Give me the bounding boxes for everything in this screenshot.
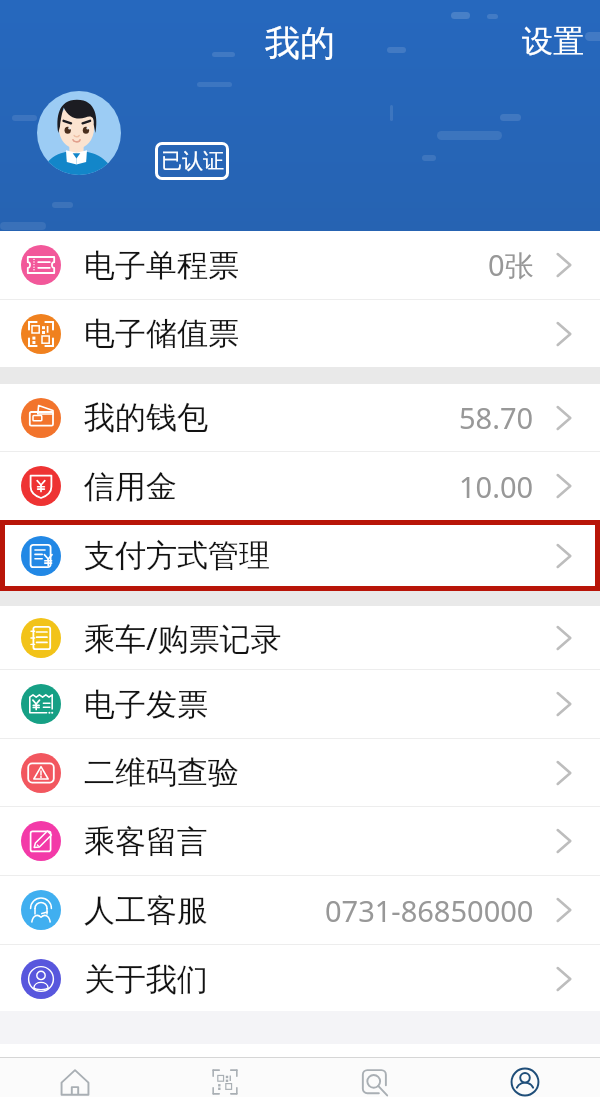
staticText: 0张	[488, 245, 534, 285]
button[interactable]: 我的钱包	[0, 384, 600, 451]
button[interactable]: Profile avatar	[37, 91, 121, 175]
staticText: 人工客服	[84, 891, 208, 930]
button[interactable]: 二维码查验	[0, 739, 600, 806]
button[interactable]: 支付方式管理	[0, 520, 600, 591]
button[interactable]: Home	[0, 1058, 150, 1097]
staticText: 0731-86850000	[325, 891, 534, 930]
button[interactable]: 已认证	[155, 142, 229, 180]
button[interactable]: 电子储值票	[0, 300, 600, 367]
button[interactable]: Search	[300, 1058, 450, 1097]
button[interactable]: Scan	[150, 1058, 300, 1097]
staticText: 我的	[265, 21, 335, 65]
staticText: 设置	[522, 22, 584, 61]
staticText: 信用金	[84, 467, 177, 506]
staticText: 电子储值票	[84, 314, 239, 353]
staticText: 乘客留言	[84, 822, 208, 861]
staticText: 我的钱包	[84, 398, 208, 437]
staticText: 电子发票	[84, 685, 208, 724]
button[interactable]: Profile	[450, 1058, 600, 1097]
staticText: 支付方式管理	[84, 536, 270, 575]
button[interactable]: 设置	[512, 12, 594, 71]
button[interactable]: 乘客留言	[0, 807, 600, 875]
button[interactable]: 人工客服	[0, 876, 600, 944]
staticText: 已认证	[161, 148, 224, 174]
button[interactable]: 关于我们	[0, 945, 600, 1013]
staticText: 二维码查验	[84, 753, 239, 792]
staticText: 电子单程票	[84, 246, 239, 285]
staticText: 58.70	[459, 398, 534, 437]
button[interactable]: 电子单程票	[0, 231, 600, 299]
staticText: 乘车/购票记录	[84, 617, 282, 659]
staticText: 关于我们	[84, 960, 208, 999]
button[interactable]: 电子发票	[0, 670, 600, 738]
button[interactable]: 乘车/购票记录	[0, 606, 600, 669]
staticText: 10.00	[459, 467, 534, 506]
button[interactable]: 信用金	[0, 452, 600, 520]
